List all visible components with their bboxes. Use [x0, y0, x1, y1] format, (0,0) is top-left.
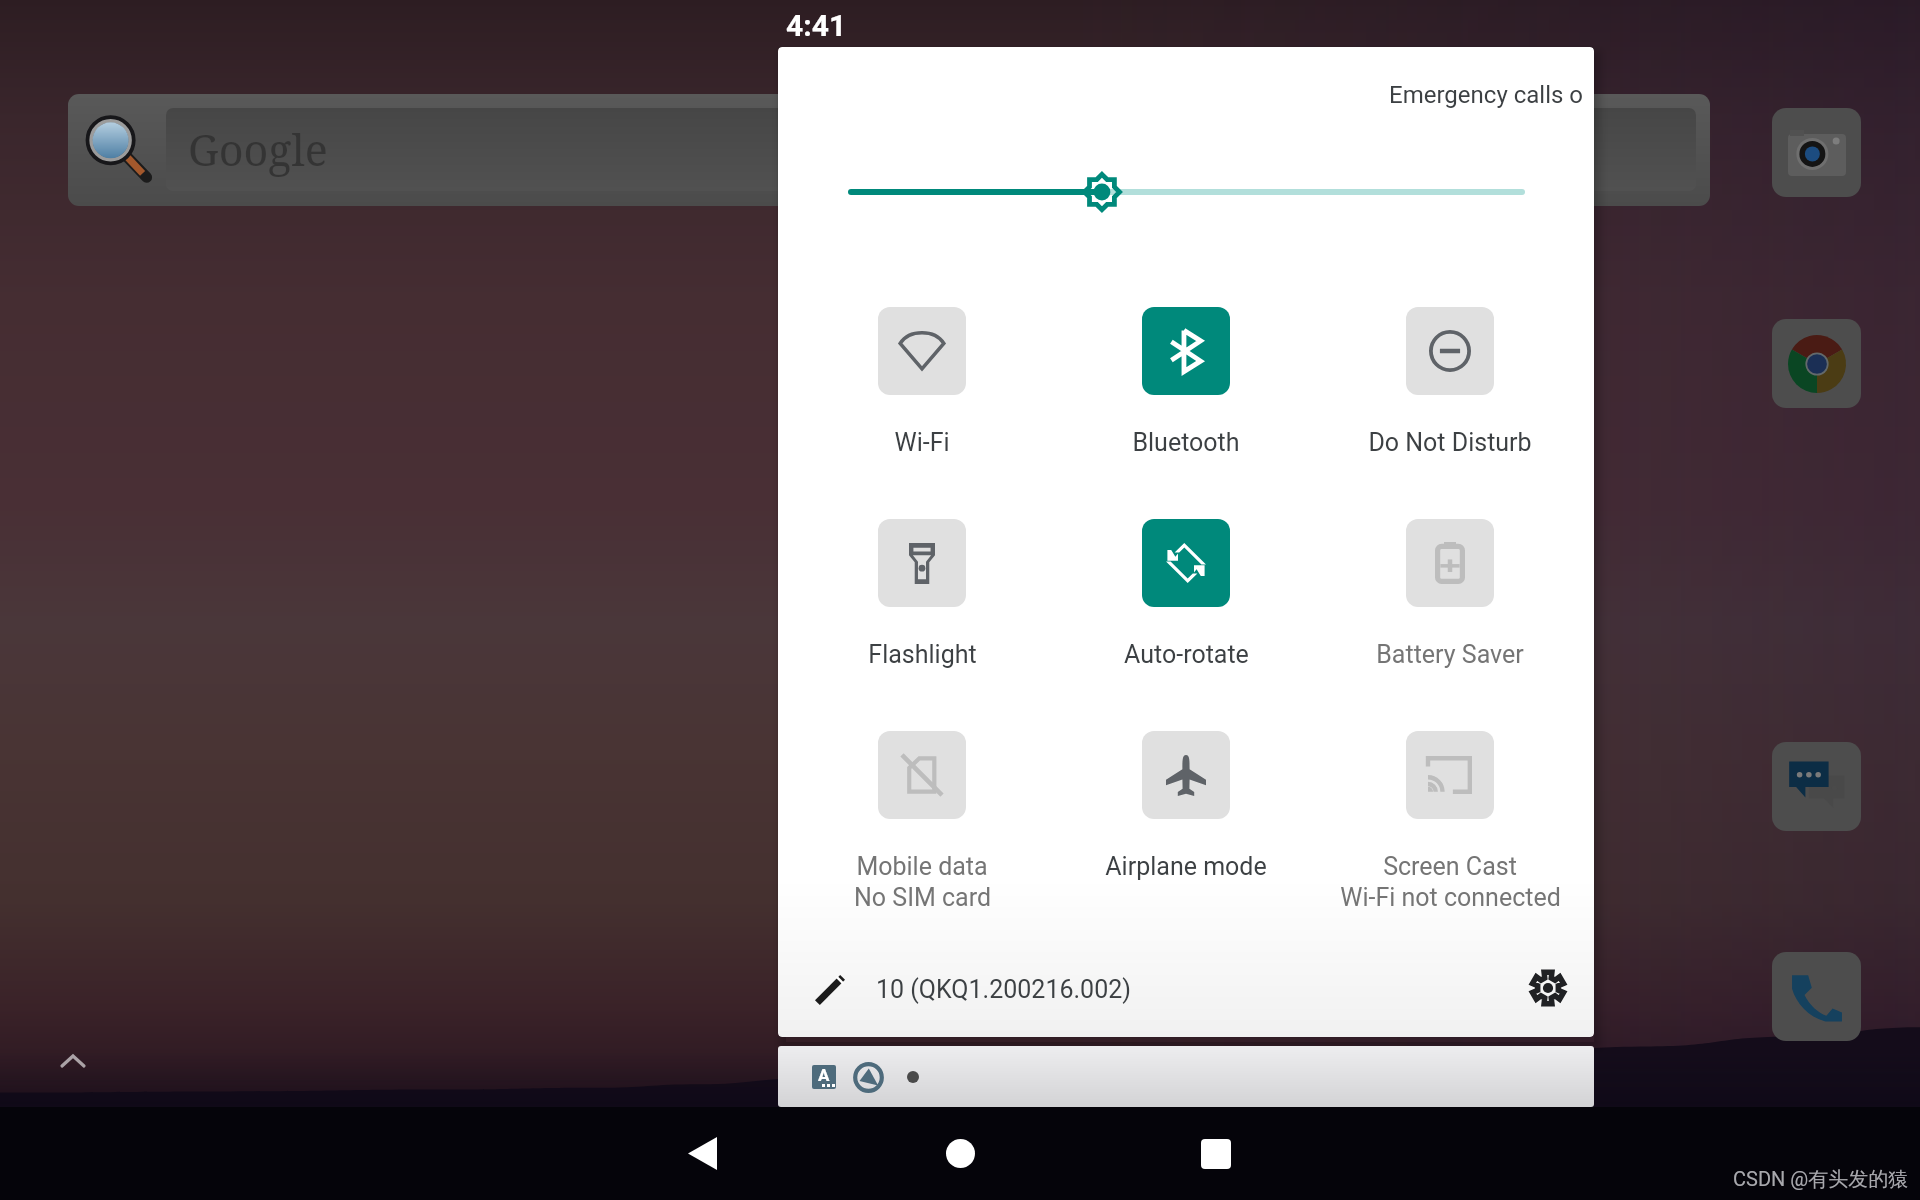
staticText: 4:41 — [786, 8, 847, 43]
button[interactable]: Settings — [1520, 960, 1576, 1016]
staticText: Screen Cast — [1383, 852, 1517, 881]
staticText: No SIM card — [854, 883, 991, 912]
staticText: Do Not Disturb — [1368, 428, 1532, 457]
button[interactable]: Do Not Disturb — [1320, 307, 1580, 457]
button[interactable]: Battery Saver — [1320, 519, 1580, 669]
button[interactable]: Screen Cast — [1320, 731, 1580, 910]
staticText: Emergency calls o — [778, 81, 1583, 109]
button[interactable]: Back — [642, 1107, 762, 1200]
staticText: A — [818, 1065, 830, 1085]
staticText: Wi-Fi not connected — [1340, 883, 1561, 912]
button[interactable]: Recents — [1156, 1107, 1276, 1200]
staticText: Battery Saver — [1376, 640, 1524, 669]
staticText: Flashlight — [868, 640, 977, 669]
staticText: Mobile data — [856, 852, 988, 881]
staticText: CSDN @有头发的猿 — [1733, 1167, 1909, 1192]
button[interactable]: Google search — [68, 94, 1710, 206]
button[interactable]: App — [1772, 319, 1861, 408]
button[interactable]: Auto-rotate — [1056, 519, 1316, 669]
button[interactable]: Airplane mode — [1056, 731, 1316, 881]
button[interactable]: Edit — [800, 960, 860, 1020]
button[interactable]: App — [1772, 952, 1861, 1041]
staticText: Bluetooth — [1132, 428, 1240, 457]
staticText: Airplane mode — [1105, 852, 1267, 881]
button[interactable]: Home — [900, 1107, 1020, 1200]
button[interactable]: Bluetooth — [1056, 307, 1316, 457]
button[interactable]: App — [1772, 108, 1861, 197]
staticText: 10 (QKQ1.200216.002) — [876, 975, 1131, 1004]
staticText: Google — [188, 120, 328, 179]
button[interactable]: Wi-Fi — [792, 307, 1052, 457]
staticText: Auto-rotate — [1124, 640, 1249, 669]
staticText: Wi-Fi — [894, 428, 950, 457]
button[interactable]: App — [1772, 742, 1861, 831]
button[interactable]: Flashlight — [792, 519, 1052, 669]
button[interactable]: Mobile data — [792, 731, 1052, 910]
